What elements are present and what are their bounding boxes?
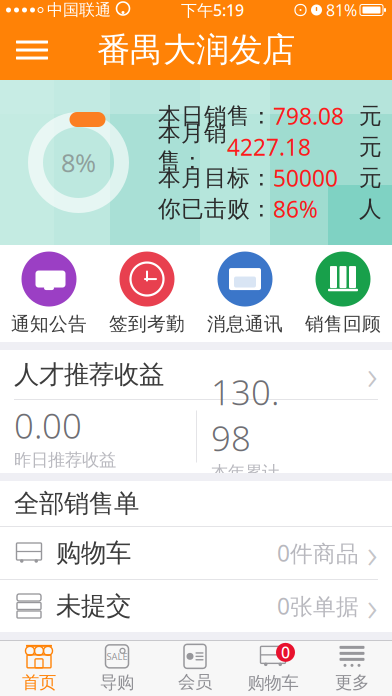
staticText: 本月目标： — [158, 164, 273, 192]
staticText: 通知公告 — [11, 312, 87, 335]
staticText: 130.98 — [211, 369, 279, 461]
staticText: 4227.18 — [227, 132, 311, 162]
staticText: 番禺大润发店 — [97, 29, 295, 70]
staticText: 0张单据 — [277, 591, 359, 621]
staticText: › — [367, 348, 378, 401]
staticText: 中国联通 — [47, 0, 111, 20]
staticText: 本月销售： — [158, 119, 227, 175]
staticText: 81% — [326, 0, 357, 21]
staticText: 购物车 — [56, 537, 131, 568]
staticText: 消息通讯 — [207, 312, 283, 335]
staticText: 0 — [281, 642, 290, 663]
button[interactable]: 签到考勤 — [98, 245, 196, 342]
button[interactable]: 人才推荐收益 — [0, 350, 392, 399]
staticText: 0.00 — [14, 402, 82, 448]
staticText: 首页 — [22, 672, 56, 693]
button[interactable]: 0 — [234, 641, 312, 696]
staticText: 0件商品 — [277, 538, 359, 568]
button[interactable]: SALE — [78, 641, 156, 696]
button[interactable]: 未提交 — [0, 580, 392, 632]
staticText: 8% — [61, 146, 96, 179]
staticText: 50000 — [273, 163, 338, 193]
button[interactable]: 销售回顾 — [294, 245, 392, 342]
staticText: 人才推荐收益 — [14, 359, 164, 390]
button[interactable]: 首页 — [0, 641, 78, 696]
button[interactable]: 购物车 — [0, 527, 392, 579]
staticText: 元 — [359, 102, 382, 130]
staticText: 更多 — [335, 672, 369, 693]
staticText: 全部销售单 — [14, 488, 139, 519]
staticText: 本年累计推荐收益 — [211, 462, 279, 504]
staticText: 签到考勤 — [109, 312, 185, 335]
staticText: 销售回顾 — [305, 312, 381, 335]
button[interactable]: Menu — [0, 20, 64, 80]
button[interactable]: 更多 — [312, 641, 392, 696]
staticText: 798.08 — [273, 101, 344, 131]
staticText: › — [367, 579, 378, 632]
button[interactable]: 消息通讯 — [196, 245, 294, 342]
staticText: 购物车 — [247, 672, 298, 694]
staticText: 未提交 — [56, 590, 131, 621]
staticText: 昨日推荐收益 — [14, 449, 116, 471]
staticText: 本日销售： — [158, 102, 273, 130]
button[interactable]: 通知公告 — [0, 245, 98, 342]
staticText: 元 — [359, 164, 382, 192]
staticText: 下午5:19 — [181, 0, 244, 21]
staticText: 你已击败： — [158, 195, 273, 223]
staticText: 元 — [359, 133, 382, 161]
staticText: 86% — [273, 194, 318, 224]
staticText: 会员 — [178, 671, 212, 693]
staticText: 导购 — [100, 672, 134, 693]
staticText: 人 — [359, 195, 382, 223]
staticText: SALE — [106, 650, 127, 663]
button[interactable]: 会员 — [156, 641, 234, 696]
staticText: › — [367, 526, 378, 579]
